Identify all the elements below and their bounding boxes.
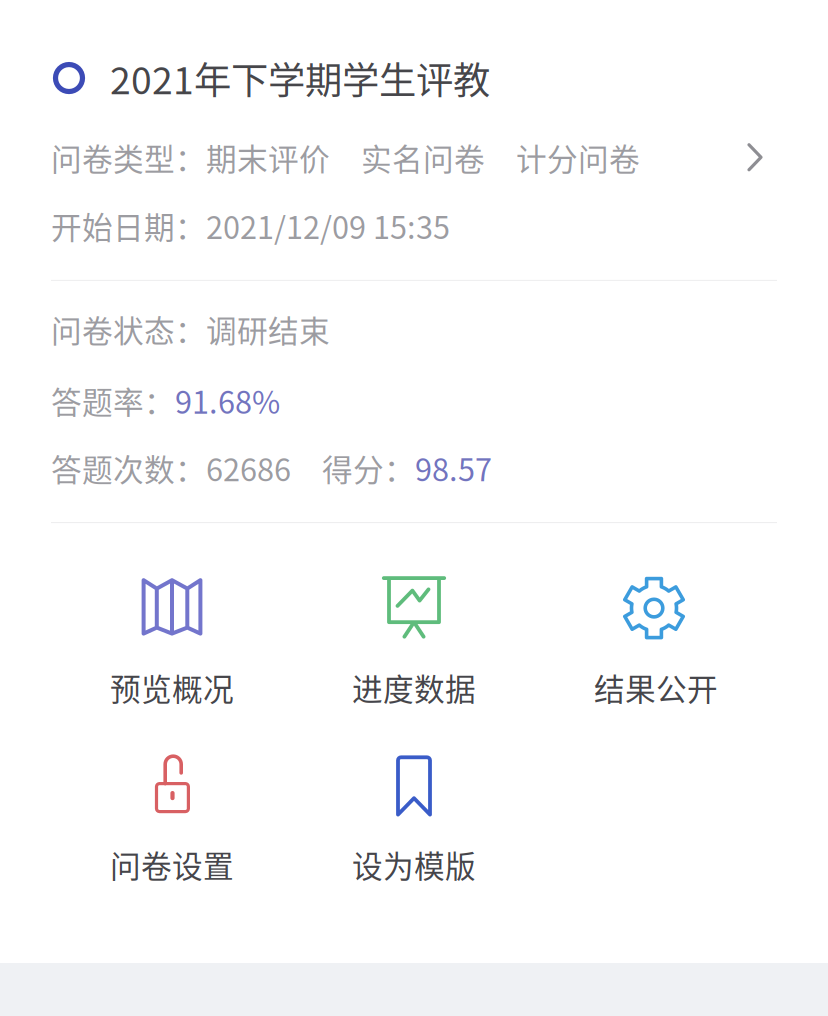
staticText: 62686 [206,446,291,490]
staticText: 2021年下学期学生评教 [110,51,490,105]
button[interactable]: 问卷设置 [51,749,293,926]
staticText: 预览概况 [110,665,234,709]
staticText: 问卷类型：期末评价 实名问卷 计分问卷 [51,135,640,179]
staticText: 问卷状态：调研结束 [51,307,330,351]
staticText: 答题次数： [51,446,206,490]
staticText: 问卷设置 [110,842,234,886]
button[interactable]: 进度数据 [293,572,535,749]
button[interactable]: 设为模版 [293,749,535,926]
staticText: 91.68% [175,378,280,423]
staticText: 答题率： [51,378,175,423]
button[interactable]: 问卷类型：期末评价 实名问卷 计分问卷 [0,105,828,181]
staticText: 开始日期：2021/12/09 15:35 [51,203,450,248]
staticText: 98.57 [415,446,492,490]
button[interactable]: 预览概况 [51,572,293,749]
staticText: 进度数据 [352,665,476,709]
staticText: 设为模版 [352,842,476,886]
button[interactable]: 结果公开 [535,572,777,749]
staticText: 得分： [291,446,415,490]
staticText: 结果公开 [594,665,718,709]
